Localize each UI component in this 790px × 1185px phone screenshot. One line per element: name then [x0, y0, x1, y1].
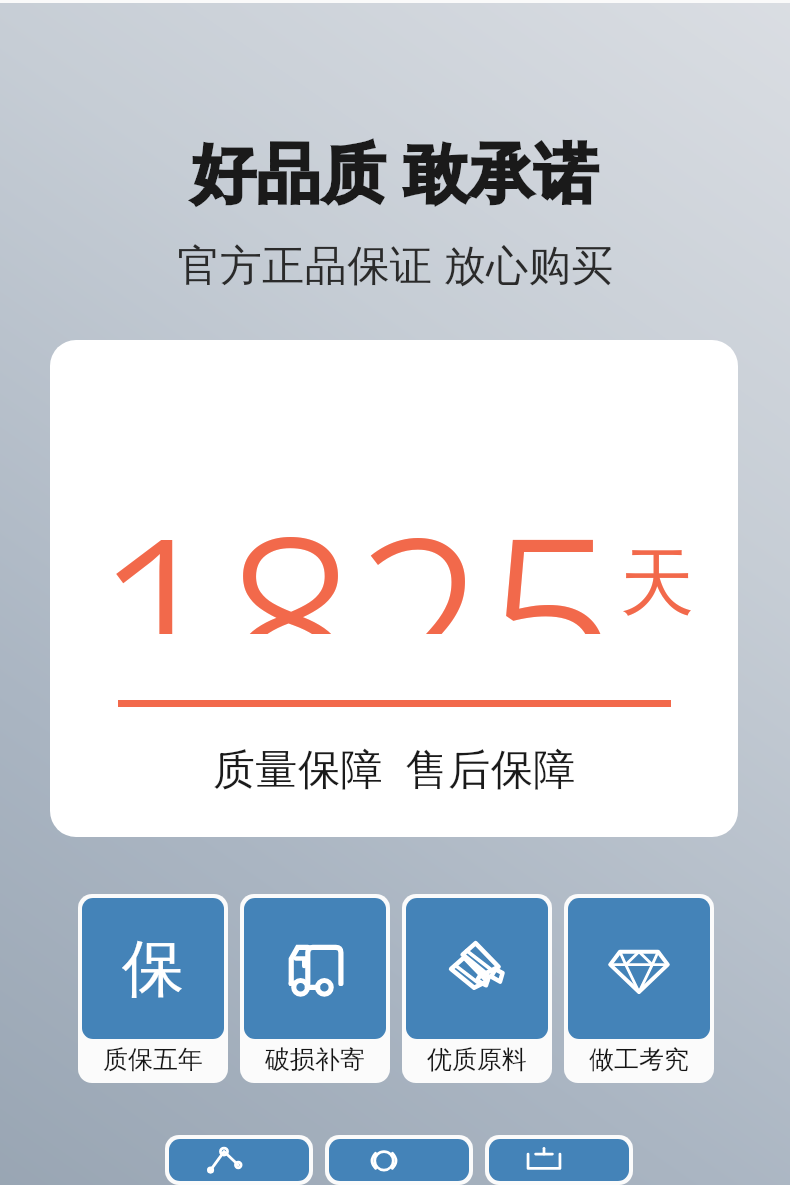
- staticText: 质量保障 售后保障: [213, 739, 576, 796]
- staticText: 优质原料: [427, 1044, 527, 1075]
- staticText: 好品质 敢承诺: [191, 128, 599, 215]
- button[interactable]: 安全稳固: [165, 1135, 313, 1185]
- staticText: 天: [620, 537, 694, 630]
- button[interactable]: 精工细作: [485, 1135, 633, 1185]
- staticText: 1825: [94, 458, 616, 634]
- staticText: 官方正品保证 放心购买: [177, 235, 614, 292]
- button[interactable]: 1825: [50, 340, 738, 837]
- staticText: 保: [122, 930, 184, 1008]
- button[interactable]: 做工考究: [564, 894, 714, 1083]
- button[interactable]: 贴心服务: [325, 1135, 473, 1185]
- staticText: 破损补寄: [265, 1044, 365, 1075]
- staticText: 做工考究: [589, 1044, 689, 1075]
- staticText: 质保五年: [103, 1044, 203, 1075]
- button[interactable]: 保: [78, 894, 228, 1083]
- button[interactable]: 优质原料: [402, 894, 552, 1083]
- button[interactable]: 破损补寄: [240, 894, 390, 1083]
